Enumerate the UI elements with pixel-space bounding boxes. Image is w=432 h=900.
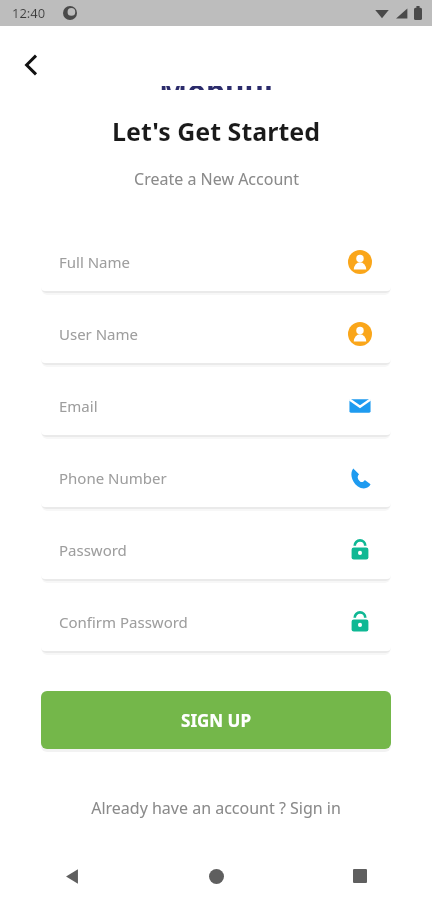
staticText: Create a New Account xyxy=(134,168,299,190)
button[interactable]: SIGN UP xyxy=(41,691,391,749)
button[interactable]: Recent apps xyxy=(288,852,432,900)
staticText: Already have an account ? Sign in xyxy=(91,797,341,819)
staticText: Password xyxy=(59,540,347,560)
button[interactable]: Back xyxy=(8,42,54,88)
staticText: Let's Get Started xyxy=(112,114,320,148)
staticText: Mobuui xyxy=(159,86,273,90)
staticText: User Name xyxy=(59,324,347,344)
button[interactable]: Full Name xyxy=(41,233,391,291)
staticText: 12:40 xyxy=(12,4,46,22)
button[interactable]: Already have an account ? Sign in xyxy=(20,797,412,819)
button[interactable]: User Name xyxy=(41,305,391,363)
button[interactable]: Email xyxy=(41,377,391,435)
staticText: Confirm Password xyxy=(59,612,347,632)
button[interactable]: Confirm Password xyxy=(41,593,391,651)
button[interactable]: Home xyxy=(144,852,288,900)
button[interactable]: Back xyxy=(0,852,144,900)
staticText: Phone Number xyxy=(59,468,347,488)
button[interactable]: Phone Number xyxy=(41,449,391,507)
staticText: SIGN UP xyxy=(181,709,251,732)
button[interactable]: Password xyxy=(41,521,391,579)
staticText: Email xyxy=(59,396,347,416)
staticText: Full Name xyxy=(59,252,347,272)
